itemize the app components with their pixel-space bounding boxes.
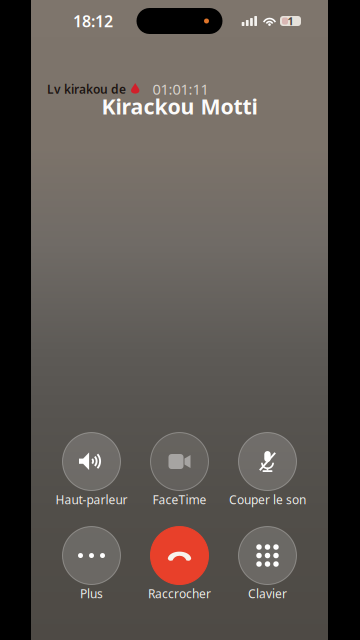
staticText: Couper le son <box>229 491 306 507</box>
button[interactable]: FaceTime <box>135 430 223 510</box>
button[interactable]: Plus <box>47 524 135 604</box>
staticText: FaceTime <box>152 491 206 507</box>
staticText: 1 <box>287 14 293 28</box>
staticText: Haut-parleur <box>55 491 127 507</box>
button[interactable]: Haut-parleur <box>47 430 135 510</box>
staticText: 18:12 <box>73 10 113 32</box>
staticText: Kirackou Motti <box>101 92 257 120</box>
button[interactable]: Raccrocher <box>135 524 223 604</box>
staticText: Lv kirakou de <box>47 81 126 97</box>
button[interactable]: Clavier <box>223 524 311 604</box>
staticText: 01:01:11 <box>152 79 208 99</box>
staticText: Clavier <box>248 585 287 601</box>
staticText: Raccrocher <box>148 585 211 601</box>
button[interactable]: Couper le son <box>223 430 311 510</box>
staticText: Plus <box>80 585 103 601</box>
